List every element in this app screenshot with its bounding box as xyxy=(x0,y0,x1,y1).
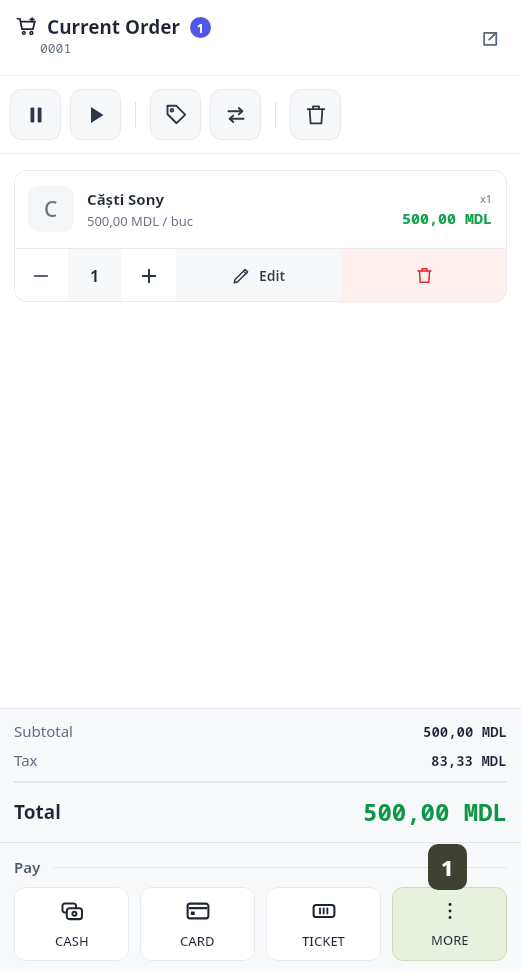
staticText: 83,33 MDL xyxy=(431,751,507,770)
button[interactable]: Increase quantity xyxy=(121,249,176,302)
staticText: Căști Sony xyxy=(87,189,164,209)
button[interactable]: Remove item xyxy=(341,249,507,302)
button[interactable]: TICKET xyxy=(266,887,381,961)
staticText: Tax xyxy=(14,750,38,770)
staticText: 0001 xyxy=(40,39,72,57)
button[interactable]: Edit xyxy=(176,249,341,302)
button[interactable]: Resume order xyxy=(70,89,121,140)
button[interactable]: CARD xyxy=(140,887,255,961)
staticText: 500,00 MDL xyxy=(363,795,507,828)
staticText: x1 xyxy=(480,191,493,206)
staticText: 1 xyxy=(90,265,100,287)
staticText: 1 xyxy=(197,20,204,36)
staticText: MORE xyxy=(431,931,469,949)
button[interactable]: Open order in new window xyxy=(471,20,509,58)
staticText: 500,00 MDL xyxy=(423,722,507,741)
staticText: Pay xyxy=(14,857,41,877)
staticText: C xyxy=(44,195,58,224)
button[interactable]: Decrease quantity xyxy=(14,249,68,302)
button[interactable]: Delete order xyxy=(290,89,341,140)
button[interactable]: Discount xyxy=(150,89,201,140)
staticText: Subtotal xyxy=(14,721,73,741)
button[interactable]: MORE xyxy=(392,887,507,961)
staticText: 1 xyxy=(441,852,454,882)
staticText: 500,00 MDL / buc xyxy=(87,212,194,230)
staticText: Current Order xyxy=(47,14,181,40)
button[interactable]: CASH xyxy=(14,887,129,961)
button[interactable]: C xyxy=(14,170,507,248)
button[interactable]: Pause order xyxy=(10,89,61,140)
staticText: CASH xyxy=(55,932,89,950)
staticText: Edit xyxy=(259,266,286,285)
staticText: TICKET xyxy=(302,932,345,950)
staticText: CARD xyxy=(180,932,215,950)
button[interactable]: Exchange xyxy=(210,89,261,140)
staticText: 500,00 MDL xyxy=(402,208,493,228)
staticText: Total xyxy=(14,799,61,825)
